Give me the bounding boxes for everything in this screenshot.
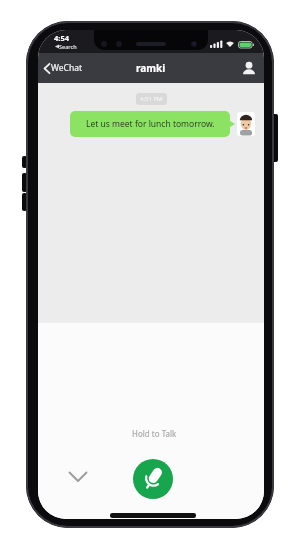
button[interactable]: WeChat (43, 62, 82, 74)
button[interactable] (133, 459, 173, 499)
staticText: 4:51 PM (140, 95, 163, 103)
staticText: ramki (136, 61, 166, 75)
staticText: WeChat (51, 62, 82, 74)
button[interactable] (68, 471, 88, 483)
staticText: 4:54 (54, 33, 69, 43)
staticText: Let us meet for lunch tomorrow. (86, 118, 215, 130)
staticText: Hold to Talk (132, 428, 177, 439)
staticText: Search (59, 43, 77, 50)
button[interactable]: Let us meet for lunch tomorrow. (70, 111, 230, 137)
button[interactable] (242, 61, 256, 75)
